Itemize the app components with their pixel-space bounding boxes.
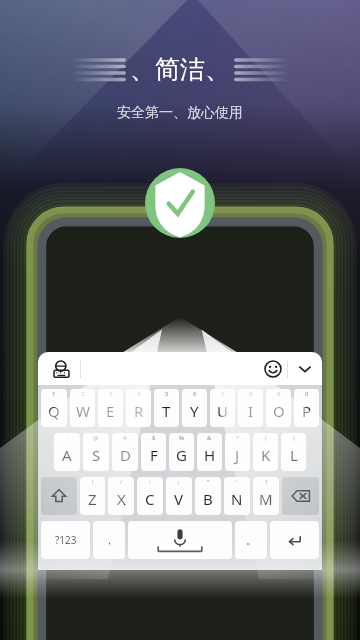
button[interactable]: & <box>197 433 222 471</box>
button[interactable]: 4 <box>126 389 151 427</box>
staticText: ! <box>92 478 94 486</box>
button[interactable]: ; <box>166 477 192 515</box>
staticText: F <box>150 445 158 465</box>
staticText: X <box>117 489 126 509</box>
staticText: : <box>149 478 151 486</box>
button[interactable]: ! <box>80 477 105 515</box>
staticText: / <box>120 478 123 486</box>
staticText: K <box>261 445 271 465</box>
button[interactable]: - <box>54 433 80 471</box>
staticText: # <box>123 434 127 442</box>
staticText: * <box>236 434 240 442</box>
staticText: G <box>176 445 187 465</box>
button[interactable]: Space, voice input <box>128 521 232 559</box>
staticText: 2 <box>81 390 85 398</box>
button[interactable]: % <box>169 433 194 471</box>
staticText: 。 <box>246 533 257 547</box>
staticText: N <box>231 489 243 509</box>
button[interactable]: / <box>108 477 134 515</box>
staticText: 4 <box>137 390 141 398</box>
button[interactable]: $ <box>141 433 166 471</box>
staticText: ( <box>265 434 267 442</box>
button[interactable]: @ <box>83 433 109 471</box>
button[interactable]: Security verified <box>145 168 215 238</box>
button[interactable]: ?123 <box>41 521 90 559</box>
staticText: 6 <box>193 390 197 398</box>
staticText: A <box>62 445 72 465</box>
button[interactable]: * <box>225 433 250 471</box>
staticText: 8 <box>249 390 253 398</box>
button[interactable]: ? <box>253 477 279 515</box>
button[interactable]: 0 <box>294 389 319 427</box>
staticText: 3 <box>109 390 113 398</box>
staticText: M <box>259 489 273 509</box>
staticText: O <box>273 401 285 421</box>
button[interactable]: ) <box>281 433 306 471</box>
button[interactable]: : <box>137 477 163 515</box>
staticText: T <box>162 401 171 421</box>
staticText: @ <box>93 434 99 442</box>
staticText: ?123 <box>55 533 77 547</box>
staticText: I <box>248 401 254 421</box>
staticText: & <box>207 434 212 442</box>
staticText: Z <box>88 489 97 509</box>
staticText: ? <box>265 478 268 486</box>
staticText: B <box>203 489 213 509</box>
button[interactable]: ' <box>224 477 250 515</box>
button[interactable]: Shift <box>41 477 77 515</box>
button[interactable]: 3 <box>98 389 123 427</box>
staticText: R <box>134 401 144 421</box>
button[interactable]: 7 <box>210 389 235 427</box>
staticText: P <box>302 401 312 421</box>
button[interactable]: Hide keyboard <box>288 352 322 385</box>
staticText: D <box>120 445 131 465</box>
button[interactable]: 9 <box>266 389 291 427</box>
staticText: 9 <box>277 390 281 398</box>
button[interactable]: Emoji <box>259 355 287 383</box>
button[interactable]: Enter <box>270 521 319 559</box>
staticText: 0 <box>305 390 309 398</box>
staticText: J <box>235 445 240 465</box>
button[interactable]: 8 <box>238 389 263 427</box>
staticText: 1 <box>52 390 56 398</box>
staticText: E <box>106 401 115 421</box>
staticText: ; <box>178 478 180 486</box>
staticText: V <box>174 489 184 509</box>
staticText: 7 <box>221 390 225 398</box>
staticText: - <box>66 434 68 442</box>
button[interactable]: ( <box>253 433 278 471</box>
staticText: H <box>204 445 216 465</box>
staticText: ) <box>293 434 295 442</box>
button[interactable]: 1 <box>41 389 67 427</box>
staticText: Q <box>48 401 60 421</box>
staticText: $ <box>152 434 156 442</box>
staticText: 5 <box>165 390 169 398</box>
staticText: 、简洁、 <box>130 54 230 85</box>
button[interactable]: Backspace <box>282 477 319 515</box>
staticText: S <box>92 445 101 465</box>
button[interactable]: 。 <box>235 521 267 559</box>
staticText: ， <box>104 533 115 547</box>
button[interactable]: 2 <box>70 389 95 427</box>
staticText: 安全第一、放心使用 <box>117 104 243 122</box>
button[interactable]: ， <box>93 521 125 559</box>
staticText: U <box>217 401 228 421</box>
staticText: W <box>76 401 90 421</box>
staticText: Y <box>190 401 199 421</box>
button[interactable]: 6 <box>182 389 207 427</box>
staticText: % <box>179 434 184 442</box>
button[interactable]: Input method <box>48 356 74 382</box>
button[interactable]: # <box>112 433 138 471</box>
button[interactable]: " <box>195 477 221 515</box>
button[interactable]: 5 <box>154 389 179 427</box>
staticText: L <box>290 445 298 465</box>
staticText: " <box>207 478 210 486</box>
staticText: ' <box>236 478 238 486</box>
staticText: C <box>145 489 155 509</box>
